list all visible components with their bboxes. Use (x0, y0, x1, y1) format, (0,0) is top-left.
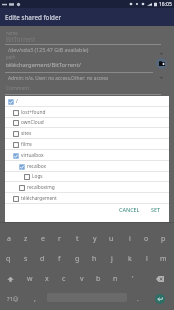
button[interactable]: m (155, 249, 172, 269)
staticText: m (160, 254, 167, 264)
button[interactable]: sites (5, 128, 169, 139)
button[interactable]: virtualbox (5, 150, 169, 161)
button[interactable]: ownCloud (5, 117, 169, 128)
button[interactable]: ?1☺ (0, 289, 26, 309)
button[interactable]: t (69, 229, 86, 249)
button[interactable]: z (17, 229, 34, 249)
button[interactable]: Logs (5, 171, 169, 182)
staticText: f (58, 254, 61, 264)
button[interactable]: k (121, 249, 138, 269)
button[interactable]: Enter (149, 289, 171, 309)
button[interactable]: q (0, 249, 17, 269)
staticText: v (80, 274, 84, 284)
staticText: x (45, 274, 49, 284)
staticText: u (109, 234, 114, 244)
staticText: w (27, 274, 33, 284)
button[interactable]: h (86, 249, 103, 269)
staticText: BitTorrent (6, 35, 36, 43)
button[interactable]: l (138, 249, 155, 269)
button[interactable]: recalbox (5, 161, 169, 172)
staticText: g (75, 254, 80, 264)
staticText: SET (151, 206, 160, 213)
staticText: téléchargement/BitTorrent/ (6, 61, 81, 69)
staticText: lost+found (21, 109, 46, 116)
button[interactable]: lost+found (5, 107, 169, 118)
staticText: q (6, 254, 11, 264)
staticText: p (161, 234, 166, 244)
button[interactable]: s (17, 249, 34, 269)
button[interactable]: w (21, 269, 38, 289)
staticText: ?1☺ (7, 295, 19, 303)
staticText: b (96, 274, 101, 284)
staticText: Comment (6, 85, 30, 92)
staticText: r (58, 234, 61, 244)
button[interactable]: o (138, 229, 155, 249)
staticText: téléchargement (21, 195, 57, 202)
button[interactable]: a (0, 229, 17, 249)
button[interactable]: New folder (156, 58, 167, 69)
staticText: j (111, 254, 113, 264)
button[interactable]: v (73, 269, 90, 289)
button[interactable]: u (103, 229, 120, 249)
button[interactable]: c (55, 269, 72, 289)
button[interactable]: , (27, 289, 43, 309)
staticText: . (137, 294, 139, 304)
button[interactable]: r (51, 229, 68, 249)
staticText: c (62, 274, 66, 284)
button[interactable]: f (51, 249, 68, 269)
button[interactable]: j (103, 249, 120, 269)
button[interactable]: SET (148, 203, 163, 216)
staticText: z (24, 234, 28, 244)
staticText: k (128, 254, 132, 264)
staticText: y (93, 234, 97, 244)
staticText: sites (21, 130, 32, 137)
staticText: name (6, 30, 18, 36)
staticText: n (113, 274, 118, 284)
staticText: d (40, 254, 45, 264)
button[interactable]: / (5, 96, 169, 107)
staticText: / (16, 98, 18, 105)
staticText: Edite shared folder (5, 13, 62, 21)
staticText: , (34, 294, 36, 304)
staticText: Logs (32, 173, 43, 180)
button[interactable]: d (34, 249, 51, 269)
staticText: h (92, 254, 97, 264)
staticText: path (6, 54, 16, 60)
staticText: t (76, 234, 79, 244)
staticText: ' (132, 274, 134, 284)
staticText: s (24, 254, 28, 264)
staticText: a (7, 234, 11, 244)
button[interactable]: y (86, 229, 103, 249)
button[interactable]: x (38, 269, 55, 289)
button[interactable]: p (155, 229, 172, 249)
button[interactable]: CANCEL (116, 203, 143, 216)
staticText: l (146, 254, 148, 264)
button[interactable]: g (69, 249, 86, 269)
staticText: 16:05 (159, 1, 172, 8)
staticText: e (41, 234, 45, 244)
staticText: CANCEL (119, 206, 140, 213)
button[interactable]: i (121, 229, 138, 249)
staticText: /dev/sda3 (125.47 GiB available) (8, 46, 89, 53)
staticText: recalbox (27, 163, 47, 170)
staticText: ownCloud (21, 119, 44, 126)
button[interactable]: films (5, 139, 169, 150)
staticText: i (129, 234, 131, 244)
button[interactable]: Backspace (149, 269, 171, 289)
staticText: o (144, 234, 149, 244)
button[interactable]: téléchargement (5, 193, 169, 204)
staticText: Admin: n/a, User: no access,Other: no ac… (8, 75, 109, 82)
button[interactable]: . (130, 289, 146, 309)
staticText: films (21, 141, 32, 148)
button[interactable]: e (34, 229, 51, 249)
button[interactable]: b (90, 269, 107, 289)
button[interactable]: ' (124, 269, 141, 289)
button[interactable]: recalboximg (5, 182, 169, 193)
staticText: virtualbox (21, 152, 44, 159)
button[interactable]: n (107, 269, 124, 289)
staticText: recalboximg (27, 184, 55, 191)
button[interactable]: Shift (0, 269, 20, 289)
